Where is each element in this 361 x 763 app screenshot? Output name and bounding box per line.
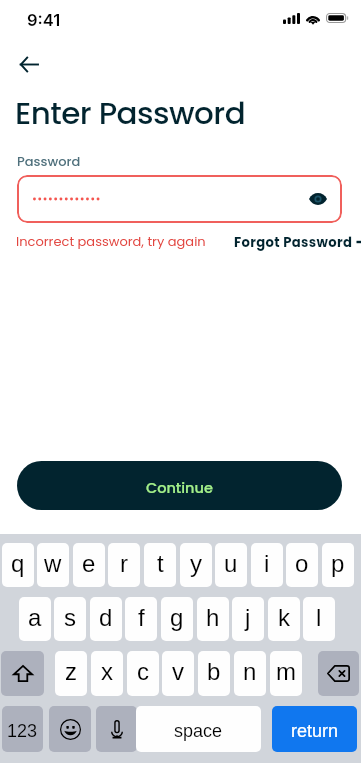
button[interactable]: l (303, 597, 335, 641)
button[interactable]: j (232, 597, 264, 641)
staticText: j (245, 604, 251, 631)
button[interactable]: p (322, 543, 354, 587)
staticText: s (64, 604, 76, 631)
staticText: c (137, 658, 149, 685)
button[interactable]: f (125, 597, 157, 641)
button[interactable]: a (19, 597, 51, 641)
button[interactable]: u (215, 543, 247, 587)
staticText: o (295, 550, 309, 577)
button[interactable]: x (91, 651, 123, 696)
button[interactable]: o (286, 543, 318, 587)
staticText: l (316, 604, 322, 631)
button[interactable]: s (54, 597, 86, 641)
staticText: g (170, 604, 184, 631)
button[interactable]: v (162, 651, 194, 696)
staticText: Forgot Password (234, 233, 353, 251)
button[interactable]: Backspace (318, 651, 359, 696)
button[interactable]: Continue (17, 461, 342, 510)
button[interactable]: n (234, 651, 266, 696)
staticText: t (157, 550, 164, 577)
staticText: 123 (7, 721, 38, 741)
button[interactable]: m (270, 651, 302, 696)
staticText: x (101, 658, 113, 685)
staticText: r (120, 550, 128, 577)
button[interactable]: d (90, 597, 122, 641)
staticText: w (44, 550, 62, 577)
button[interactable]: c (127, 651, 159, 696)
button[interactable]: i (251, 543, 283, 587)
button[interactable]: q (2, 543, 34, 587)
staticText: v (172, 658, 184, 685)
button[interactable]: Emoji (49, 706, 91, 752)
button[interactable]: h (197, 597, 229, 641)
button[interactable]: t (144, 543, 176, 587)
staticText: d (99, 604, 113, 631)
staticText: y (190, 550, 202, 577)
staticText: i (264, 550, 270, 577)
button[interactable]: Show password (303, 184, 333, 214)
button[interactable]: Dictate (96, 706, 137, 752)
staticText: z (65, 658, 77, 685)
staticText: Continue (146, 478, 213, 498)
staticText: u (224, 550, 238, 577)
button[interactable]: w (37, 543, 69, 587)
button[interactable]: z (55, 651, 87, 696)
staticText: Incorrect password, try again (16, 232, 206, 250)
staticText: e (82, 550, 96, 577)
button[interactable]: Show password (17, 175, 342, 223)
button[interactable]: b (198, 651, 230, 696)
staticText: Password (17, 152, 81, 170)
staticText: f (138, 604, 145, 631)
staticText: Enter Password (15, 91, 246, 134)
button[interactable]: k (268, 597, 300, 641)
staticText: n (243, 658, 257, 685)
button[interactable]: Shift (1, 651, 44, 696)
button[interactable]: r (108, 543, 140, 587)
button[interactable]: Forgot Password (234, 232, 361, 252)
staticText: return (291, 721, 339, 741)
button[interactable]: g (161, 597, 193, 641)
staticText: 9:41 (27, 10, 61, 30)
staticText: m (276, 658, 296, 685)
staticText: k (278, 604, 290, 631)
button[interactable]: return (272, 706, 357, 752)
staticText: p (331, 550, 345, 577)
staticText: h (206, 604, 220, 631)
staticText: b (207, 658, 221, 685)
staticText: q (11, 550, 25, 577)
staticText: space (174, 721, 223, 741)
staticText: a (28, 604, 42, 631)
button[interactable]: y (180, 543, 212, 587)
button[interactable]: e (73, 543, 105, 587)
button[interactable]: Back (14, 49, 44, 79)
button[interactable]: 123 (2, 706, 43, 752)
button[interactable]: space (136, 706, 261, 752)
